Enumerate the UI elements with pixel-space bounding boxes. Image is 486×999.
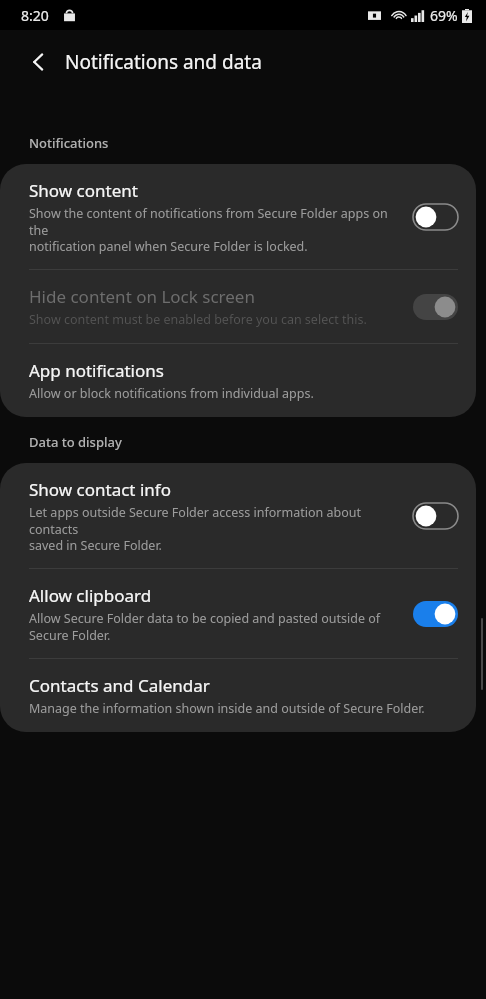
- staticText: Show content: [29, 179, 138, 202]
- button[interactable]: Toggle off: [413, 204, 458, 230]
- staticText: Notifications and data: [65, 49, 262, 75]
- staticText: Allow clipboard: [29, 584, 152, 607]
- button: Hide content on Lock screen: [0, 270, 476, 343]
- staticText: Allow or block notifications from indivi…: [29, 385, 314, 402]
- button[interactable]: Toggle off: [413, 503, 458, 529]
- button[interactable]: Show contact info: [0, 463, 476, 568]
- button[interactable]: Contacts and Calendar: [0, 659, 476, 732]
- staticText: Manage the information shown inside and …: [29, 700, 425, 717]
- staticText: Contacts and Calendar: [29, 674, 210, 697]
- staticText: 8:20: [21, 6, 49, 25]
- button[interactable]: App notifications: [0, 344, 476, 417]
- button[interactable]: Back: [15, 38, 63, 86]
- staticText: 69%: [430, 6, 458, 25]
- button[interactable]: Toggle on: [413, 601, 458, 627]
- staticText: Allow Secure Folder data to be copied an…: [29, 610, 381, 643]
- staticText: Show content must be enabled before you …: [29, 311, 367, 328]
- staticText: Show the content of notifications from S…: [29, 205, 403, 254]
- staticText: Let apps outside Secure Folder access in…: [29, 504, 403, 553]
- staticText: Hide content on Lock screen: [29, 285, 255, 308]
- button: Toggle disabled: [413, 294, 458, 320]
- button[interactable]: Show content: [0, 164, 476, 269]
- staticText: Show contact info: [29, 478, 171, 501]
- staticText: Data to display: [29, 433, 122, 451]
- staticText: App notifications: [29, 359, 164, 382]
- button[interactable]: Allow clipboard: [0, 569, 476, 658]
- staticText: Notifications: [29, 134, 109, 152]
